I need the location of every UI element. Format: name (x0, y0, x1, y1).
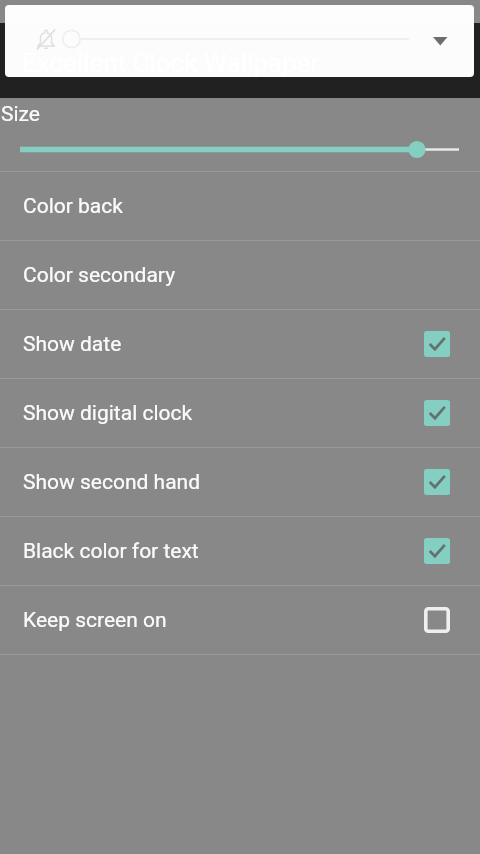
button[interactable]: Unchecked (424, 607, 450, 633)
staticText: Show date (23, 332, 122, 357)
button[interactable]: Checked (424, 469, 450, 495)
staticText: Keep screen on (23, 608, 167, 633)
button[interactable]: Keep screen on (0, 586, 480, 654)
button[interactable]: Show second hand (0, 448, 480, 516)
staticText: Color back (23, 194, 123, 219)
button[interactable]: Color back (0, 172, 480, 240)
button[interactable]: Expand (426, 29, 452, 55)
button[interactable]: Ringer mode (33, 26, 59, 52)
button[interactable]: Show date (0, 310, 480, 378)
button[interactable]: Color secondary (0, 241, 480, 309)
button[interactable]: Checked (424, 400, 450, 426)
staticText: Show digital clock (23, 401, 193, 426)
button[interactable]: Checked (424, 331, 450, 357)
staticText: Show second hand (23, 470, 201, 495)
button[interactable]: Black color for text (0, 517, 480, 585)
staticText: Size (1, 102, 40, 127)
staticText: Color secondary (23, 263, 176, 288)
staticText: Excellent Clock Wallpaper (22, 48, 320, 78)
button[interactable]: Checked (424, 538, 450, 564)
button[interactable]: Show digital clock (0, 379, 480, 447)
staticText: Black color for text (23, 539, 199, 564)
